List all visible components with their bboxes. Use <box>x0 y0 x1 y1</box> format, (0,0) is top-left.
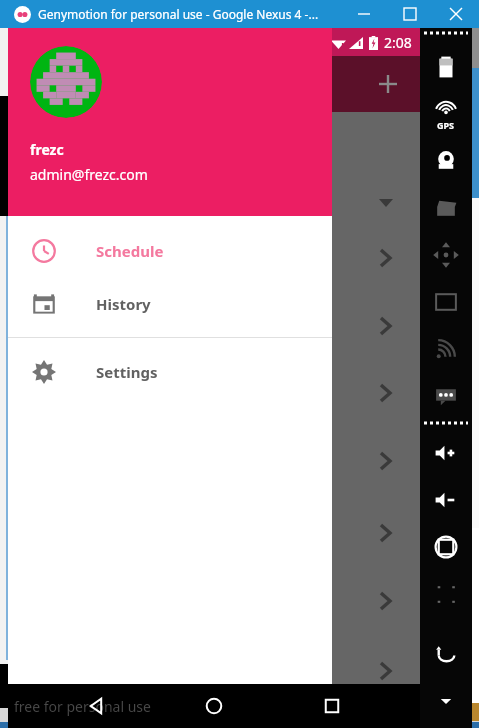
button[interactable]: Volume down <box>420 476 472 523</box>
staticText: free for personal use <box>14 697 151 716</box>
button[interactable]: Network <box>420 325 472 372</box>
button[interactable]: Home <box>184 684 244 728</box>
staticText: 2:08 <box>384 33 412 52</box>
button[interactable]: Back <box>420 630 472 677</box>
button[interactable]: Close <box>433 0 479 28</box>
button[interactable]: More <box>420 677 472 724</box>
button[interactable]: Settings <box>8 345 332 398</box>
button[interactable]: Camera <box>420 137 472 184</box>
button[interactable]: Battery <box>420 43 472 90</box>
button[interactable]: Add <box>368 64 408 104</box>
button[interactable]: Minimize <box>341 0 387 28</box>
button[interactable]: Recents <box>302 684 362 728</box>
button[interactable]: Back <box>66 684 126 728</box>
button[interactable]: D-pad <box>420 231 472 278</box>
button[interactable]: Identifiers <box>420 278 472 325</box>
staticText: GPS <box>437 119 455 131</box>
button[interactable]: Rotate <box>420 523 472 570</box>
button[interactable]: Volume up <box>420 429 472 476</box>
button[interactable]: Schedule <box>8 224 332 277</box>
button[interactable]: Record <box>420 184 472 231</box>
button[interactable]: Maximize <box>387 0 433 28</box>
button[interactable]: History <box>8 277 332 330</box>
staticText: frezc <box>30 140 64 159</box>
button[interactable]: SMS <box>420 372 472 419</box>
staticText: admin@frezc.com <box>30 165 148 184</box>
staticText: Settings <box>96 362 158 382</box>
button[interactable]: GPS <box>420 90 472 137</box>
staticText: Genymotion for personal use - Google Nex… <box>38 6 319 22</box>
staticText: History <box>96 294 151 314</box>
button[interactable]: Scale 1:1 <box>420 570 472 617</box>
staticText: Schedule <box>96 241 164 261</box>
